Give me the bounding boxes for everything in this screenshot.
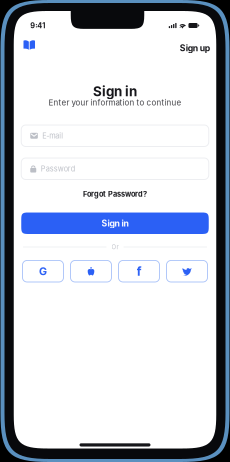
staticText: Enter your information to continue bbox=[48, 98, 181, 107]
staticText: Sign up bbox=[180, 43, 210, 53]
staticText: Sign in bbox=[93, 83, 137, 99]
button[interactable]: E-mail bbox=[21, 125, 209, 146]
staticText: 9:41 bbox=[30, 21, 45, 30]
button[interactable]: Sign in bbox=[21, 212, 209, 234]
staticText: G bbox=[39, 265, 47, 278]
button[interactable]: Continue with Twitter bbox=[166, 260, 207, 282]
button[interactable]: Library bbox=[21, 38, 37, 52]
staticText: Password bbox=[41, 164, 75, 173]
button[interactable]: Forgot Password? bbox=[80, 190, 150, 198]
button[interactable]: Continue with Google bbox=[22, 260, 63, 282]
button[interactable]: Continue with Apple bbox=[70, 260, 111, 282]
staticText: Forgot Password? bbox=[83, 190, 147, 198]
staticText: f bbox=[136, 264, 141, 279]
staticText: E-mail bbox=[42, 131, 63, 140]
button[interactable]: Sign up bbox=[178, 38, 212, 52]
button[interactable]: Password bbox=[21, 158, 209, 179]
staticText: Or bbox=[111, 243, 118, 251]
button[interactable]: Continue with Facebook bbox=[118, 260, 159, 282]
staticText: Sign in bbox=[101, 218, 128, 228]
